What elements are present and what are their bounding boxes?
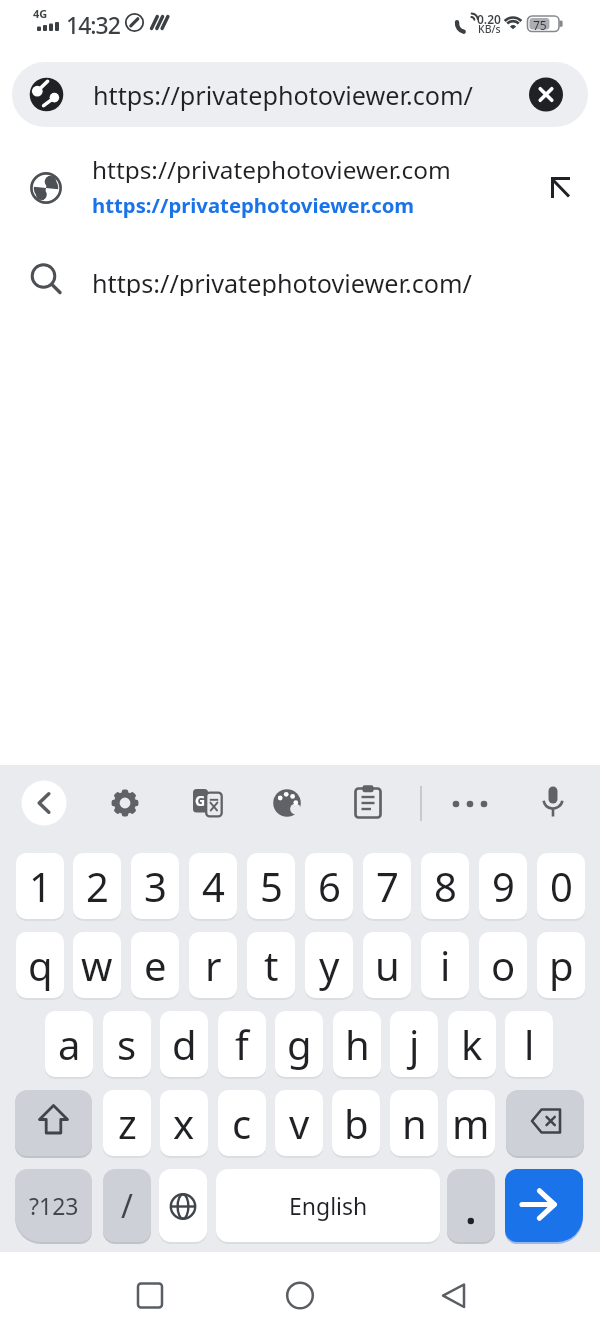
button[interactable] [530,780,576,826]
button[interactable] [15,1090,92,1156]
staticText: g [287,1017,312,1071]
button[interactable]: f [218,1011,266,1077]
staticText: f [235,1017,249,1071]
staticText: z [118,1096,137,1150]
staticText: 4G [33,6,48,19]
button[interactable]: o [479,932,527,998]
staticText: 75 [533,17,547,31]
staticText: y [319,938,340,992]
button[interactable] [187,780,233,826]
button[interactable]: 4 [189,853,237,919]
staticText: KB/s [478,22,501,33]
staticText: r [205,938,222,992]
staticText: v [289,1096,310,1150]
button[interactable]: English [216,1169,440,1242]
staticText: e [144,938,167,992]
button[interactable]: j [390,1011,438,1077]
button[interactable] [21,780,67,826]
staticText: h [345,1017,370,1071]
button[interactable]: b [332,1090,380,1156]
button[interactable]: 3 [131,853,179,919]
button[interactable] [412,1263,492,1328]
button[interactable]: ?123 [15,1169,92,1242]
button[interactable] [159,1169,207,1242]
button[interactable]: i [421,932,469,998]
button[interactable]: v [275,1090,323,1156]
staticText: English [289,1190,368,1221]
button[interactable] [447,1169,495,1242]
staticText: d [172,1017,197,1071]
button[interactable] [0,142,600,234]
staticText: i [440,938,451,992]
staticText: s [117,1017,137,1071]
button[interactable]: u [363,932,411,998]
button[interactable]: 0 [537,853,585,919]
staticText: 0 [550,859,573,913]
staticText: / [121,1184,133,1228]
staticText: n [402,1096,427,1150]
staticText: 8 [434,859,457,913]
button[interactable] [264,780,310,826]
button[interactable]: q [16,932,64,998]
button[interactable]: r [189,932,237,998]
button[interactable] [260,1263,340,1328]
staticText: q [28,938,53,992]
button[interactable] [345,780,391,826]
button[interactable]: 7 [363,853,411,919]
button[interactable]: c [218,1090,266,1156]
staticText: u [375,938,400,992]
button[interactable]: k [448,1011,496,1077]
button[interactable]: x [160,1090,208,1156]
button[interactable]: y [305,932,353,998]
button[interactable]: g [275,1011,323,1077]
staticText: l [524,1017,535,1071]
button[interactable]: 8 [421,853,469,919]
button[interactable]: d [160,1011,208,1077]
staticText: c [232,1096,252,1150]
button[interactable]: z [103,1090,151,1156]
button[interactable]: e [131,932,179,998]
button[interactable] [110,1263,190,1328]
button[interactable]: 6 [305,853,353,919]
button[interactable] [505,1169,583,1242]
button[interactable] [506,1090,584,1156]
staticText: j [409,1017,420,1071]
button[interactable]: l [505,1011,553,1077]
staticText: 5 [260,859,283,913]
staticText: 6 [318,859,341,913]
button[interactable] [524,75,568,115]
button[interactable]: 5 [247,853,295,919]
button[interactable]: h [333,1011,381,1077]
staticText: 1 [29,859,52,913]
staticText: a [58,1017,81,1071]
button[interactable] [102,780,148,826]
staticText: t [264,938,279,992]
button[interactable]: s [103,1011,151,1077]
staticText: k [461,1017,483,1071]
button[interactable]: m [447,1090,495,1156]
button[interactable]: p [537,932,585,998]
button[interactable]: n [390,1090,438,1156]
button[interactable] [0,246,600,308]
button[interactable]: / [103,1169,151,1242]
staticText: w [81,938,113,992]
staticText: o [491,938,516,992]
staticText: https://privatephotoviewer.com/ [92,266,472,296]
button[interactable]: a [45,1011,93,1077]
staticText: https://privatephotoviewer.com [92,153,451,183]
button[interactable] [447,780,493,826]
staticText: 7 [376,859,399,913]
button[interactable]: 9 [479,853,527,919]
button[interactable]: 2 [73,853,121,919]
staticText: 9 [492,859,515,913]
button[interactable] [12,62,588,127]
button[interactable]: t [247,932,295,998]
staticText: x [173,1096,195,1150]
staticText: m [452,1096,490,1150]
staticText: G [195,791,206,808]
staticText: 4 [202,859,225,913]
staticText: p [549,938,574,992]
staticText: 2 [86,859,109,913]
button[interactable]: 1 [16,853,64,919]
button[interactable]: w [73,932,121,998]
